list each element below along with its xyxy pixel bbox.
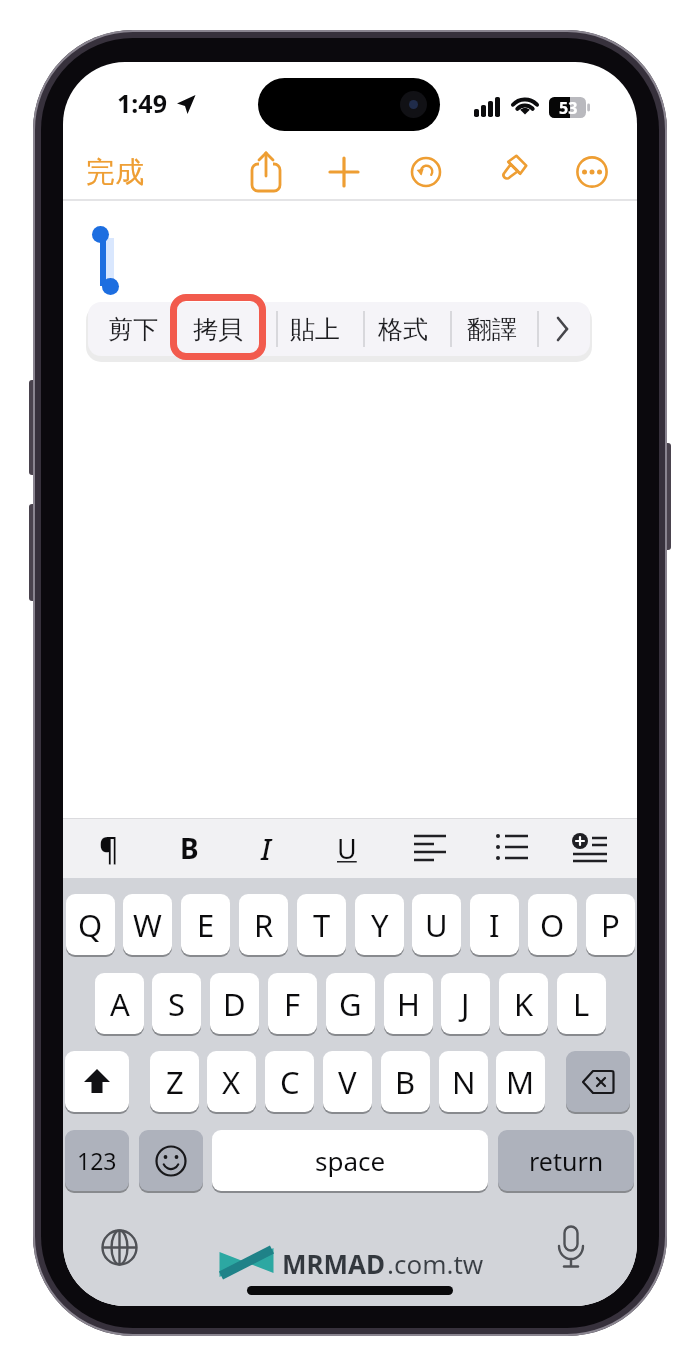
staticText: Z	[166, 1061, 184, 1103]
button[interactable]: S	[152, 973, 201, 1034]
button[interactable]: J	[441, 973, 490, 1034]
staticText: I	[489, 904, 500, 946]
staticText: N	[452, 1061, 476, 1103]
staticText: J	[461, 983, 470, 1025]
button[interactable]	[411, 157, 441, 187]
button[interactable]: D	[210, 973, 259, 1034]
staticText: 1:49	[117, 86, 167, 120]
staticText: 剪下	[108, 314, 158, 345]
staticText: M	[506, 1061, 535, 1103]
staticText: F	[284, 983, 301, 1025]
staticText: V	[338, 1061, 357, 1103]
staticText: Q	[78, 904, 103, 946]
staticText: C	[280, 1061, 300, 1103]
button[interactable]: U	[323, 828, 371, 868]
button[interactable]: ¶	[85, 828, 133, 868]
button[interactable]	[496, 834, 528, 862]
staticText: H	[397, 983, 420, 1025]
staticText: U	[425, 904, 448, 946]
button[interactable]: H	[384, 973, 433, 1034]
button[interactable]: Q	[66, 894, 115, 955]
button[interactable]: B	[165, 828, 213, 868]
staticText: W	[133, 904, 162, 946]
button[interactable]: space	[212, 1130, 488, 1191]
staticText: B	[395, 1061, 416, 1103]
staticText: ¶	[99, 828, 119, 868]
button[interactable]: X	[207, 1051, 256, 1112]
staticText: 123	[77, 1145, 117, 1176]
button[interactable]: 格式	[362, 302, 444, 356]
button[interactable]: F	[268, 973, 317, 1034]
staticText: D	[223, 983, 246, 1025]
button[interactable]	[492, 154, 528, 190]
button[interactable]: return	[498, 1130, 634, 1191]
button[interactable]	[576, 156, 608, 188]
staticText: I	[261, 829, 271, 868]
button[interactable]: Z	[150, 1051, 199, 1112]
button[interactable]	[329, 157, 359, 187]
button[interactable]	[414, 834, 446, 862]
button[interactable]: P	[586, 894, 635, 955]
button[interactable]: V	[323, 1051, 372, 1112]
button[interactable]: G	[326, 973, 375, 1034]
staticText: O	[540, 904, 565, 946]
button[interactable]: I	[470, 894, 519, 955]
staticText: L	[573, 983, 590, 1025]
button[interactable]	[65, 1051, 129, 1112]
staticText: 完成	[86, 154, 144, 191]
button[interactable]: 翻譯	[450, 302, 534, 356]
staticText: P	[601, 904, 620, 946]
staticText: Y	[371, 904, 389, 946]
button[interactable]: W	[123, 894, 172, 955]
staticText: B	[180, 829, 199, 867]
staticText: K	[514, 983, 534, 1025]
staticText: return	[529, 1144, 604, 1178]
button[interactable]: B	[381, 1051, 430, 1112]
button[interactable]: Y	[355, 894, 404, 955]
button[interactable]	[249, 150, 283, 194]
button[interactable]	[547, 314, 577, 344]
staticText: space	[315, 1143, 386, 1178]
staticText: 翻譯	[467, 314, 517, 345]
button[interactable]: O	[528, 894, 577, 955]
button[interactable]: 完成	[81, 152, 149, 192]
button[interactable]: 剪下	[93, 302, 173, 356]
staticText: MRMAD	[282, 1246, 386, 1281]
button[interactable]: C	[265, 1051, 314, 1112]
button[interactable]: R	[239, 894, 288, 955]
button[interactable]: A	[95, 973, 144, 1034]
button[interactable]	[556, 1225, 586, 1271]
button[interactable]: I	[242, 828, 290, 868]
staticText: E	[197, 904, 215, 946]
button[interactable]	[101, 1229, 138, 1266]
staticText: .com.tw	[387, 1246, 484, 1281]
staticText: 53	[559, 97, 578, 118]
button[interactable]	[139, 1130, 203, 1191]
staticText: 貼上	[290, 314, 340, 345]
button[interactable]: E	[181, 894, 230, 955]
staticText: R	[254, 904, 274, 946]
staticText: 格式	[378, 314, 428, 345]
button[interactable]: L	[557, 973, 606, 1034]
button[interactable]: T	[297, 894, 346, 955]
button[interactable]: 拷貝	[178, 302, 258, 356]
button[interactable]: N	[439, 1051, 488, 1112]
button[interactable]	[566, 1051, 630, 1112]
button[interactable]: M	[496, 1051, 545, 1112]
button[interactable]: U	[412, 894, 461, 955]
button[interactable]: K	[499, 973, 548, 1034]
staticText: 拷貝	[193, 314, 243, 345]
button[interactable]	[571, 832, 607, 864]
button[interactable]: 123	[65, 1130, 129, 1191]
staticText: X	[222, 1061, 241, 1103]
staticText: G	[339, 983, 362, 1025]
staticText: A	[110, 983, 130, 1025]
staticText: T	[313, 904, 331, 946]
staticText: U	[337, 830, 357, 867]
staticText: S	[168, 983, 186, 1025]
button[interactable]: 貼上	[275, 302, 355, 356]
